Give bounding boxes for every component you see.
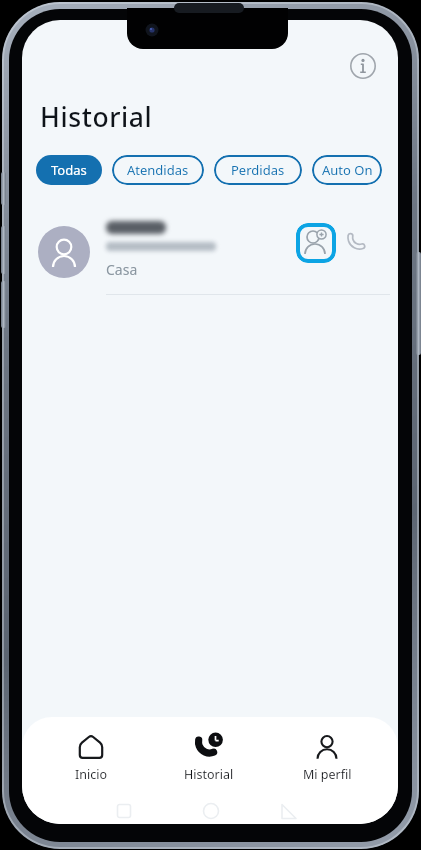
staticText: Historial — [40, 99, 153, 135]
staticText: Auto On — [322, 161, 373, 179]
button[interactable]: Inicio — [41, 733, 141, 803]
button[interactable]: Historial — [159, 733, 259, 803]
button[interactable]: Perdidas — [214, 155, 302, 185]
staticText: Casa — [106, 260, 138, 279]
button[interactable]: Atendidas — [112, 155, 204, 185]
button[interactable] — [350, 53, 376, 79]
staticText: Atendidas — [127, 161, 189, 179]
button[interactable]: Todas — [36, 155, 102, 185]
staticText: Historial — [184, 766, 234, 783]
staticText: Inicio — [75, 766, 107, 783]
button[interactable] — [296, 223, 336, 263]
staticText: Todas — [51, 161, 87, 179]
button[interactable] — [344, 230, 370, 256]
staticText: Perdidas — [231, 161, 285, 179]
staticText: Mi perfil — [303, 766, 352, 783]
button[interactable]: Mi perfil — [277, 733, 377, 803]
button[interactable]: Auto On — [312, 155, 382, 185]
